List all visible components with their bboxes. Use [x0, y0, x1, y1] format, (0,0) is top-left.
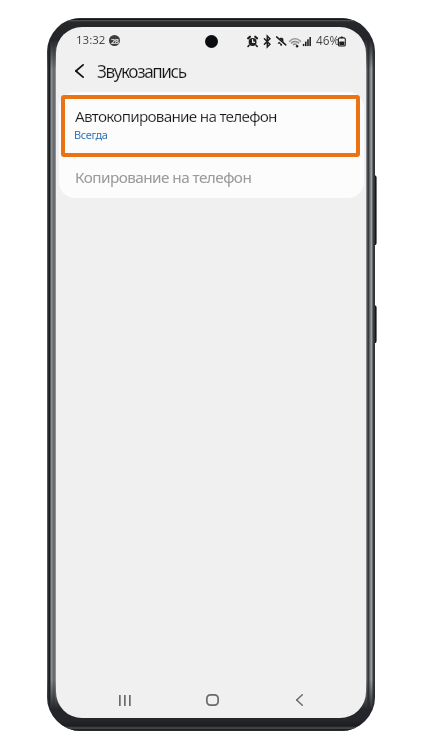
staticText: 13:32 — [76, 32, 106, 48]
staticText: Автокопирование на телефон — [75, 106, 277, 127]
button[interactable]: Recent apps — [105, 680, 145, 718]
staticText: 46% — [316, 32, 340, 48]
staticText: 28 — [111, 36, 119, 46]
button[interactable]: Копирование на телефон — [59, 159, 364, 198]
button[interactable]: Back — [65, 57, 93, 85]
staticText: Звукозапись — [97, 60, 186, 83]
staticText: Всегда — [74, 127, 108, 142]
staticText: Копирование на телефон — [75, 167, 252, 188]
button[interactable]: Back — [279, 680, 319, 718]
button[interactable]: Автокопирование на телефон — [61, 95, 360, 157]
button[interactable]: Home — [192, 680, 232, 718]
